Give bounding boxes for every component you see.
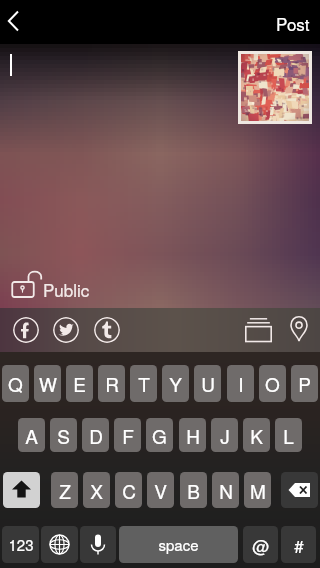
staticText: X xyxy=(90,477,103,504)
button[interactable]: H xyxy=(179,418,206,452)
button[interactable]: key xyxy=(80,526,116,563)
button[interactable]: Q xyxy=(2,365,29,402)
button[interactable]: O xyxy=(259,365,286,402)
button[interactable]: K xyxy=(243,418,270,452)
button[interactable]: G xyxy=(146,418,173,452)
button[interactable]: key xyxy=(41,526,78,563)
staticText: H xyxy=(186,422,200,449)
staticText: U xyxy=(201,370,215,397)
staticText: S xyxy=(57,422,70,449)
staticText: Z xyxy=(59,477,71,504)
staticText: O xyxy=(265,370,280,397)
button[interactable]: S xyxy=(50,418,77,452)
button[interactable]: R xyxy=(98,365,125,402)
button[interactable]: C xyxy=(115,472,142,508)
staticText: K xyxy=(250,422,263,449)
button[interactable]: E xyxy=(66,365,93,402)
button[interactable]: T xyxy=(130,365,157,402)
button[interactable]: Tumblr xyxy=(94,317,120,343)
button[interactable]: 123 xyxy=(2,526,39,563)
button[interactable]: I xyxy=(227,365,254,402)
button[interactable]: Public xyxy=(8,269,100,305)
button[interactable]: Location xyxy=(282,312,316,346)
button[interactable]: @ xyxy=(243,526,278,563)
button[interactable]: W xyxy=(34,365,61,402)
button[interactable]: N xyxy=(212,472,239,508)
staticText: space xyxy=(158,534,199,555)
button[interactable]: L xyxy=(275,418,302,452)
staticText: 123 xyxy=(8,534,34,555)
button[interactable]: space xyxy=(119,526,238,563)
staticText: R xyxy=(105,370,119,397)
button[interactable]: Albums xyxy=(241,313,275,347)
staticText: F xyxy=(122,422,134,449)
button[interactable]: key xyxy=(281,472,318,508)
staticText: I xyxy=(238,370,244,397)
staticText: W xyxy=(39,370,57,397)
button[interactable]: B xyxy=(180,472,207,508)
staticText: J xyxy=(220,422,230,449)
button[interactable]: Facebook xyxy=(13,317,39,343)
button[interactable]: D xyxy=(82,418,109,452)
button[interactable]: Z xyxy=(51,472,78,508)
button[interactable]: X xyxy=(83,472,110,508)
staticText: L xyxy=(283,422,294,449)
button[interactable]: key xyxy=(3,472,40,508)
staticText: Q xyxy=(8,370,23,397)
button[interactable]: M xyxy=(244,472,271,508)
button[interactable]: V xyxy=(147,472,174,508)
button[interactable]: F xyxy=(114,418,141,452)
staticText: Y xyxy=(169,370,182,397)
staticText: @ xyxy=(252,533,270,557)
staticText: Post xyxy=(276,11,310,35)
button[interactable]: Post xyxy=(276,11,310,35)
button[interactable]: U xyxy=(194,365,221,402)
staticText: G xyxy=(152,422,167,449)
staticText: P xyxy=(298,370,311,397)
button[interactable]: Back xyxy=(0,0,40,44)
button[interactable]: J xyxy=(211,418,238,452)
staticText: E xyxy=(73,370,86,397)
staticText: B xyxy=(187,477,200,504)
staticText: N xyxy=(219,477,233,504)
staticText: # xyxy=(294,533,304,557)
staticText: Public xyxy=(43,277,90,301)
staticText: V xyxy=(154,477,167,504)
button[interactable]: Twitter xyxy=(53,317,79,343)
staticText: A xyxy=(25,422,38,449)
staticText: C xyxy=(122,477,136,504)
staticText: M xyxy=(250,477,266,504)
button[interactable]: A xyxy=(18,418,45,452)
button[interactable]: Y xyxy=(162,365,189,402)
staticText: D xyxy=(89,422,103,449)
button[interactable]: # xyxy=(281,526,316,563)
staticText: T xyxy=(138,370,150,397)
button[interactable]: P xyxy=(291,365,318,402)
